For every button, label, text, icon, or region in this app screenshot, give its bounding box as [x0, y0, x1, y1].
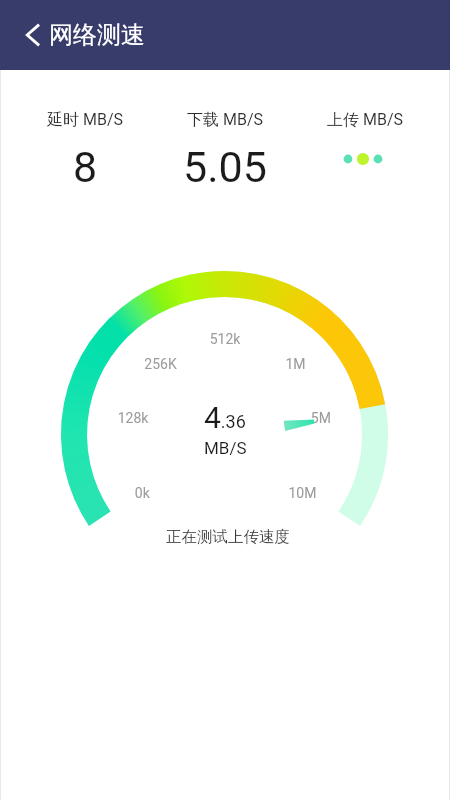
staticText: 正在测试上传速度 — [166, 527, 290, 547]
staticText: 下载 MB/S — [187, 110, 264, 130]
staticText: 上传 MB/S — [327, 110, 404, 130]
button[interactable]: Back — [12, 0, 56, 70]
staticText: 延时 MB/S — [47, 110, 124, 130]
staticText: 4.36 — [204, 400, 246, 435]
staticText: 网络测速 — [49, 20, 145, 50]
staticText: 5.05 — [183, 142, 267, 192]
staticText: MB/S — [204, 438, 247, 458]
staticText: 8 — [73, 142, 98, 192]
